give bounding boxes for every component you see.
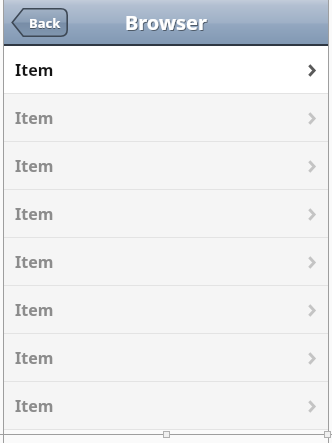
button[interactable]: Item — [4, 286, 328, 334]
staticText: Item — [15, 203, 54, 225]
staticText: Item — [15, 155, 54, 177]
button[interactable]: Item — [4, 238, 328, 286]
staticText: Browser — [126, 10, 208, 37]
button[interactable]: Item — [4, 190, 328, 238]
button[interactable]: Item — [4, 382, 328, 430]
staticText: Item — [15, 107, 54, 129]
button[interactable]: Back — [11, 8, 68, 37]
staticText: Item — [15, 59, 54, 81]
button[interactable]: Item — [4, 46, 328, 94]
button[interactable]: Item — [4, 142, 328, 190]
staticText: Back — [29, 15, 61, 33]
staticText: Back — [29, 14, 61, 32]
button[interactable]: Item — [4, 334, 328, 382]
staticText: Item — [15, 251, 54, 273]
staticText: Browser — [125, 9, 207, 36]
button[interactable]: Item — [4, 94, 328, 142]
staticText: Item — [15, 395, 54, 417]
staticText: Item — [15, 299, 54, 321]
staticText: Item — [15, 347, 54, 369]
